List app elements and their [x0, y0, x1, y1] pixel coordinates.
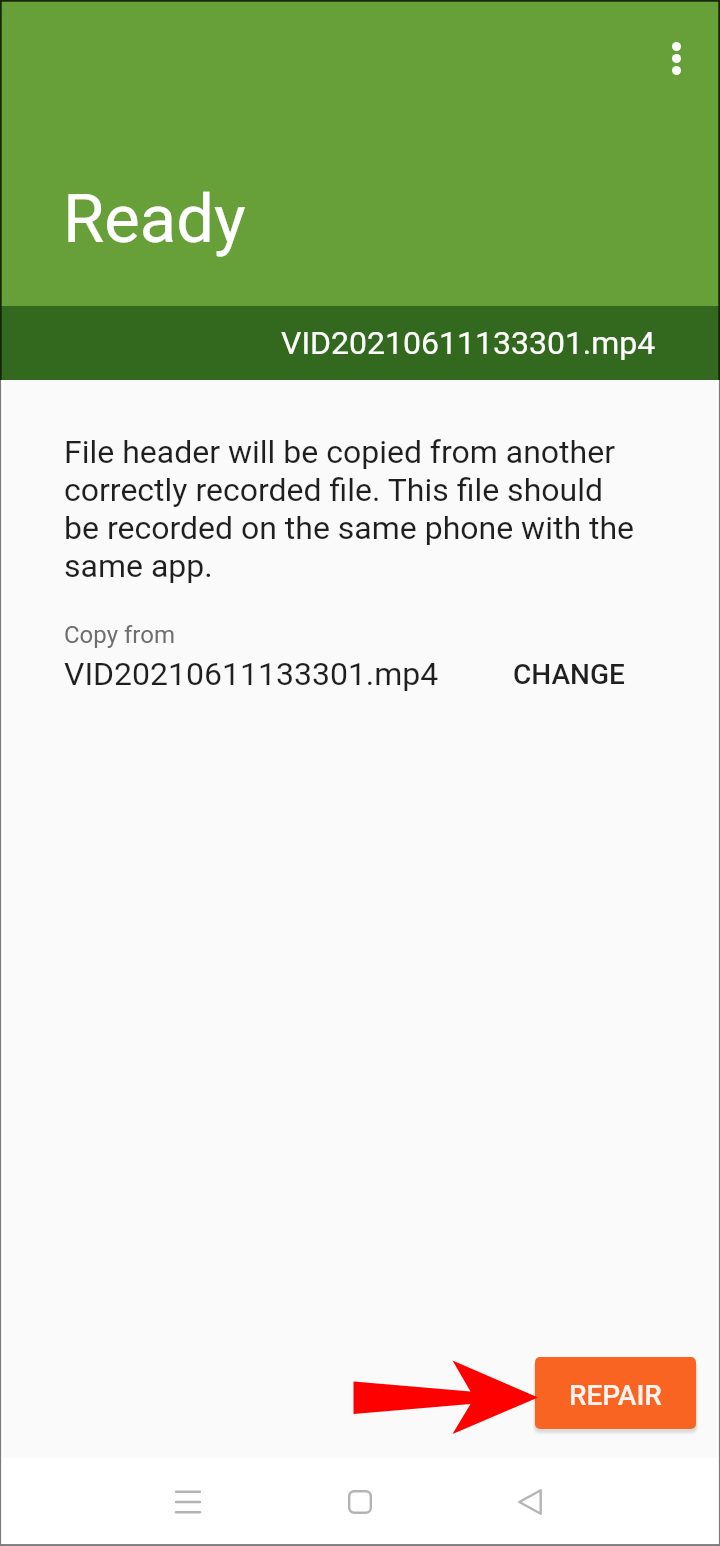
button[interactable]: More options [648, 30, 704, 86]
staticText: Ready [63, 179, 246, 259]
staticText: Copy from [64, 619, 175, 649]
staticText: REPAIR [569, 1378, 662, 1412]
staticText: VID20210611133301.mp4 [64, 655, 439, 693]
button[interactable]: Back [502, 1474, 558, 1530]
button[interactable]: Recent apps [160, 1474, 216, 1530]
staticText: File header will be copied from another … [64, 433, 642, 585]
button[interactable]: REPAIR [535, 1357, 696, 1429]
staticText: CHANGE [513, 657, 625, 691]
button[interactable]: CHANGE [489, 645, 649, 703]
button[interactable]: Home [332, 1474, 388, 1530]
staticText: VID20210611133301.mp4 [281, 322, 656, 362]
